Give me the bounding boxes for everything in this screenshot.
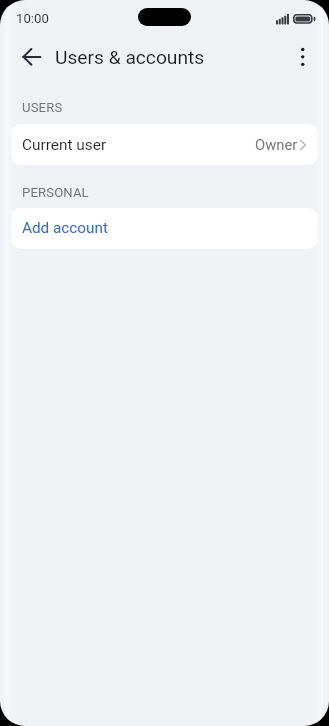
button[interactable]: Current user [11,124,318,165]
staticText: Current user [22,136,107,154]
staticText: Add account [22,219,108,237]
staticText: PERSONAL [22,185,89,200]
button[interactable]: Add account [11,208,318,249]
staticText: USERS [22,100,63,115]
button[interactable]: More options [285,39,321,75]
staticText: Users & accounts [55,46,205,69]
staticText: Owner [255,136,298,153]
staticText: 10:00 [16,11,49,26]
button[interactable]: Back [14,39,50,75]
